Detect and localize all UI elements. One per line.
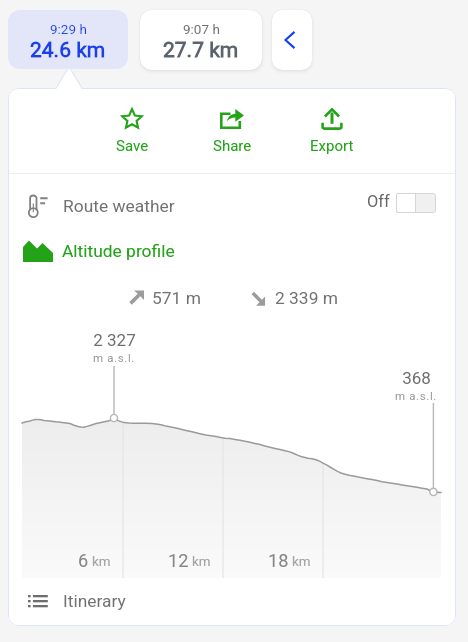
staticText: 27.7 km: [163, 38, 239, 63]
staticText: km: [192, 554, 211, 570]
staticText: 9:07 h: [183, 21, 220, 37]
staticText: 2 327: [93, 330, 136, 350]
staticText: 2 339 m: [275, 288, 338, 308]
button[interactable]: Route weather toggle, Off: [396, 193, 436, 213]
button[interactable]: 9:07 h: [140, 10, 262, 70]
staticText: Route weather: [63, 196, 175, 216]
staticText: 368: [402, 368, 431, 388]
staticText: m a.s.l.: [395, 389, 437, 402]
staticText: Itinerary: [63, 591, 126, 611]
button[interactable]: Save: [100, 108, 164, 155]
staticText: 18: [268, 550, 289, 571]
staticText: 6: [78, 550, 89, 571]
staticText: m a.s.l.: [93, 351, 135, 364]
staticText: 9:29 h: [50, 21, 87, 37]
staticText: Altitude profile: [62, 241, 175, 261]
button[interactable]: Altitude profile: [8, 229, 456, 273]
staticText: Export: [310, 137, 354, 155]
staticText: Save: [116, 137, 149, 155]
button[interactable]: Back: [272, 10, 312, 70]
button[interactable]: Itinerary: [8, 579, 456, 623]
button[interactable]: Export: [300, 108, 364, 155]
staticText: km: [92, 554, 111, 570]
button[interactable]: Share: [200, 108, 264, 155]
staticText: Share: [213, 137, 252, 155]
button[interactable]: 9:29 h: [8, 10, 128, 69]
staticText: 571 m: [152, 288, 201, 308]
staticText: 12: [168, 550, 189, 571]
staticText: 24.6 km: [30, 38, 106, 63]
staticText: km: [292, 554, 311, 570]
button[interactable]: Route weather: [8, 179, 456, 233]
staticText: Off: [367, 192, 390, 211]
